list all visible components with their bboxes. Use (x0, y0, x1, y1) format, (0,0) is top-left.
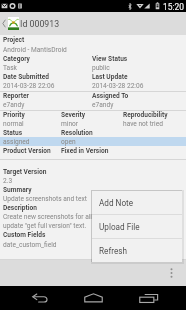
staticText: Description (3, 204, 37, 212)
staticText: Product Version (3, 147, 51, 155)
staticText: Last Update (92, 73, 128, 81)
staticText: Severity (61, 111, 86, 119)
staticText: Target Version (3, 168, 47, 176)
staticText: date_custom_field (3, 241, 57, 249)
button[interactable]: Navigate up (0, 12, 7, 35)
staticText: 15:20 (163, 2, 184, 12)
staticText: Update screenshots and text (3, 195, 87, 203)
staticText: Custom Fields (3, 231, 46, 239)
button[interactable] (0, 137, 186, 146)
staticText: 2014-03-28 22:06 (92, 82, 144, 90)
staticText: Task (3, 64, 17, 72)
staticText: Assigned To (92, 92, 129, 100)
staticText: Add Note (99, 198, 134, 208)
staticText: minor (61, 120, 79, 128)
button[interactable]: Recent apps (136, 286, 160, 310)
staticText: View Status (92, 55, 128, 63)
staticText: Id 000913 (20, 19, 60, 29)
button[interactable]: Refresh (92, 239, 182, 262)
staticText: Summary (3, 186, 32, 194)
staticText: open (61, 138, 76, 146)
staticText: public (92, 64, 110, 72)
staticText: Reporter (3, 92, 29, 100)
staticText: Create new screenshots for all (3, 213, 92, 221)
staticText: 2.3 (3, 177, 13, 185)
staticText: Reproducibility (123, 111, 168, 119)
staticText: e7andy (3, 101, 25, 109)
button[interactable]: Add Note (92, 191, 182, 214)
staticText: have not tried (123, 120, 163, 128)
staticText: Date Submitted (3, 73, 49, 81)
staticText: e7andy (92, 101, 114, 109)
button[interactable]: Upload File (92, 215, 182, 238)
staticText: update "get full version" text. (3, 222, 87, 230)
staticText: Fixed in Version (61, 147, 109, 155)
button[interactable]: More options (162, 260, 180, 286)
staticText: Upload File (99, 222, 140, 232)
staticText: Category (3, 55, 30, 63)
staticText: Priority (3, 111, 25, 119)
staticText: assigned (3, 138, 30, 146)
button[interactable]: Home (81, 286, 105, 310)
staticText: Android - MantisDroid (3, 46, 67, 54)
staticText: normal (3, 120, 24, 128)
staticText: Refresh (99, 246, 128, 256)
staticText: Project (3, 36, 25, 44)
staticText: Resolution (61, 129, 93, 137)
staticText: Status (3, 129, 23, 137)
button[interactable]: Back (27, 286, 51, 310)
staticText: 2014-03-28 22:06 (3, 82, 55, 90)
